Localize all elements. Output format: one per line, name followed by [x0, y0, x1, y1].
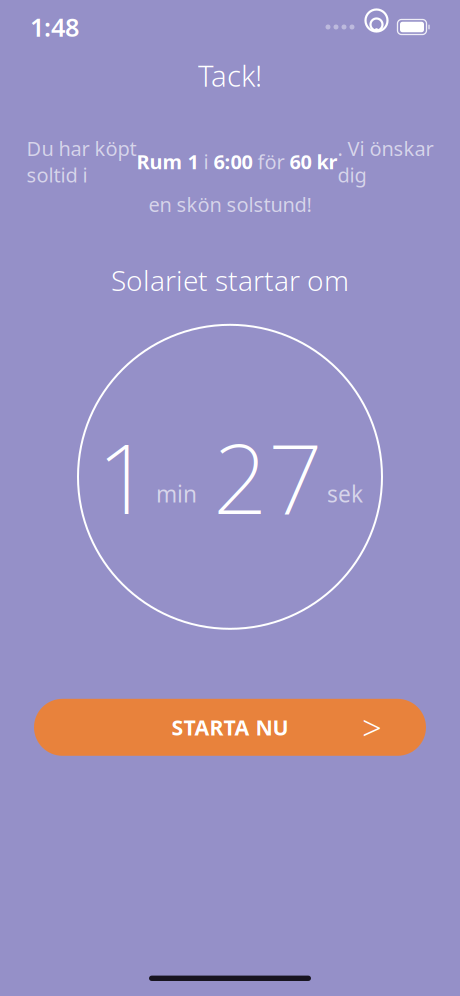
staticText: min — [156, 479, 197, 509]
staticText: för — [252, 148, 289, 175]
staticText: Rum 1 — [136, 148, 198, 175]
staticText: > — [362, 704, 382, 750]
staticText: sek — [327, 479, 363, 509]
staticText: STARTA NU — [171, 713, 288, 741]
staticText: 6:00 — [213, 148, 252, 175]
staticText: en skön solstund! — [148, 191, 311, 218]
staticText: Solariet startar om — [111, 262, 349, 299]
staticText: Du har köpt soltid i — [26, 135, 136, 188]
staticText: i — [198, 148, 213, 175]
staticText: 60 kr — [289, 148, 337, 175]
staticText: 1:48 — [30, 10, 79, 44]
staticText: . Vi önskar dig — [337, 135, 433, 188]
staticText: 1 — [97, 413, 152, 541]
staticText: 27 — [213, 413, 323, 541]
button[interactable]: STARTA NU — [34, 699, 426, 756]
staticText: Tack! — [198, 56, 262, 95]
